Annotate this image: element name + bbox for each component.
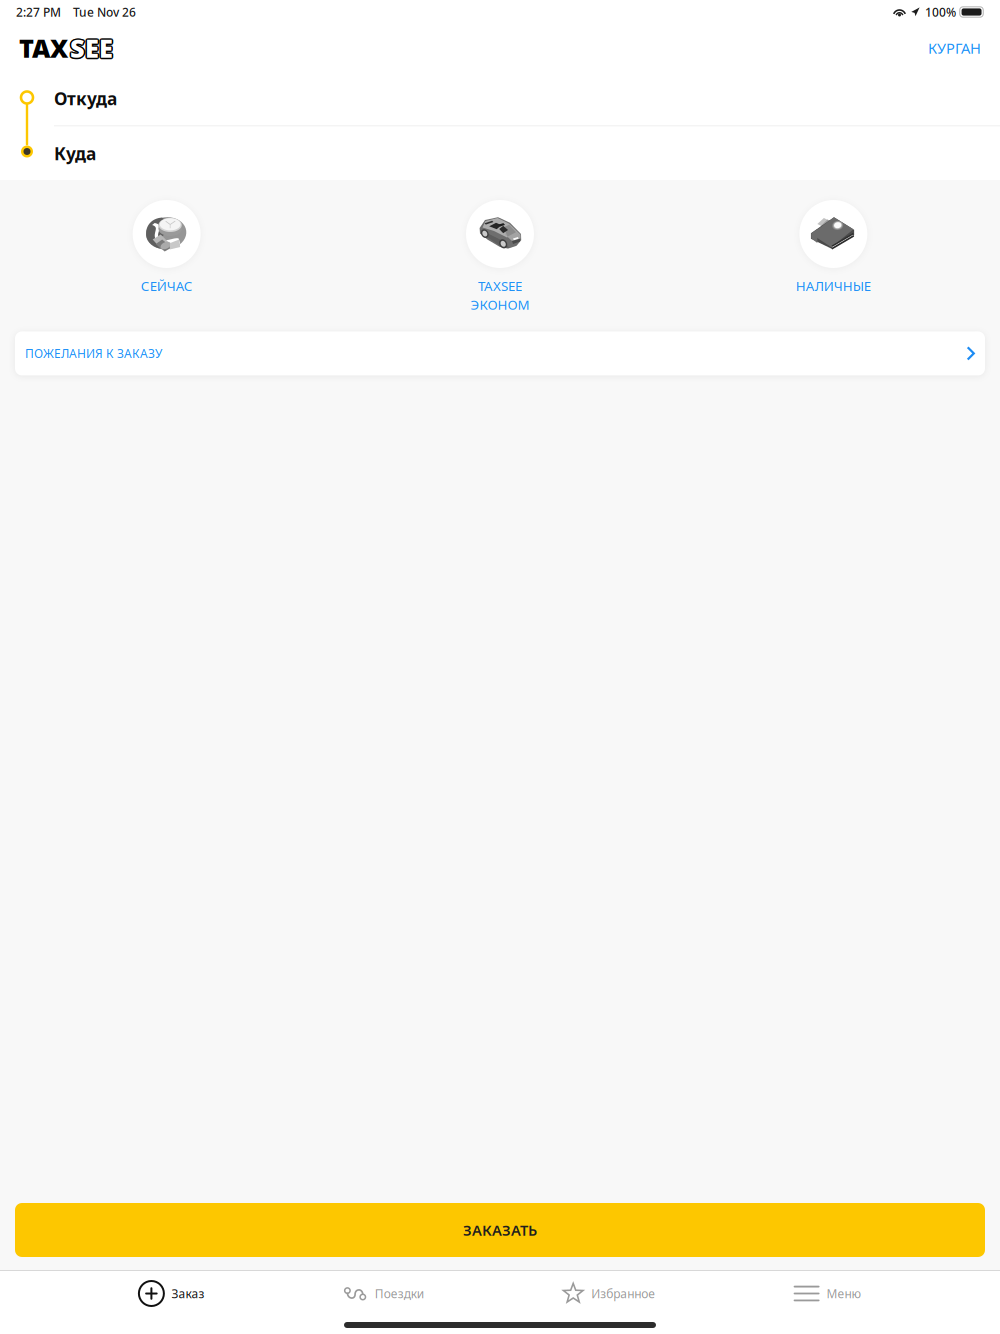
staticText: SEE bbox=[71, 30, 114, 64]
staticText: ЭКОНОМ bbox=[470, 296, 529, 313]
staticText: ЗАКАЗАТЬ bbox=[463, 1220, 537, 1240]
button[interactable]: Заказ bbox=[138, 1271, 204, 1316]
staticText: 100% bbox=[925, 4, 956, 20]
staticText: Избранное bbox=[591, 1285, 655, 1301]
button[interactable]: СЕЙЧАС bbox=[0, 200, 333, 295]
button[interactable]: TAX bbox=[19, 31, 113, 65]
staticText: SEE bbox=[70, 31, 113, 65]
button[interactable]: Избранное bbox=[562, 1271, 655, 1316]
staticText: SEE bbox=[69, 31, 112, 65]
staticText: Поездки bbox=[375, 1285, 424, 1301]
button[interactable]: TAXSEE bbox=[333, 200, 667, 313]
button[interactable]: КУРГАН bbox=[928, 38, 981, 58]
button[interactable]: Поездки bbox=[343, 1271, 424, 1316]
button[interactable]: Меню bbox=[794, 1271, 862, 1316]
staticText: TAXSEE bbox=[478, 277, 522, 295]
staticText: КУРГАН bbox=[928, 38, 981, 58]
staticText: Заказ bbox=[171, 1285, 204, 1301]
staticText: НАЛИЧНЫЕ bbox=[796, 277, 871, 295]
staticText: TAX bbox=[19, 31, 68, 65]
button[interactable]: Откуда bbox=[0, 71, 1000, 125]
staticText: Куда bbox=[54, 142, 96, 165]
staticText: Откуда bbox=[54, 87, 117, 110]
button[interactable]: НАЛИЧНЫЕ bbox=[667, 200, 1000, 295]
staticText: SEE bbox=[69, 30, 112, 64]
staticText: SEE bbox=[71, 31, 114, 65]
staticText: SEE bbox=[69, 32, 112, 66]
button[interactable]: ПОЖЕЛАНИЯ К ЗАКАЗУ bbox=[15, 331, 985, 375]
staticText: SEE bbox=[71, 32, 114, 66]
staticText: 2:27 PM bbox=[16, 4, 61, 20]
button[interactable]: Куда bbox=[0, 126, 1000, 180]
staticText: SEE bbox=[70, 33, 113, 66]
button[interactable]: ЗАКАЗАТЬ bbox=[15, 1203, 985, 1257]
staticText: ПОЖЕЛАНИЯ К ЗАКАЗУ bbox=[25, 345, 162, 361]
staticText: Меню bbox=[827, 1285, 862, 1301]
staticText: Tue Nov 26 bbox=[73, 4, 136, 20]
staticText: SEE bbox=[70, 30, 113, 63]
staticText: СЕЙЧАС bbox=[141, 277, 193, 295]
